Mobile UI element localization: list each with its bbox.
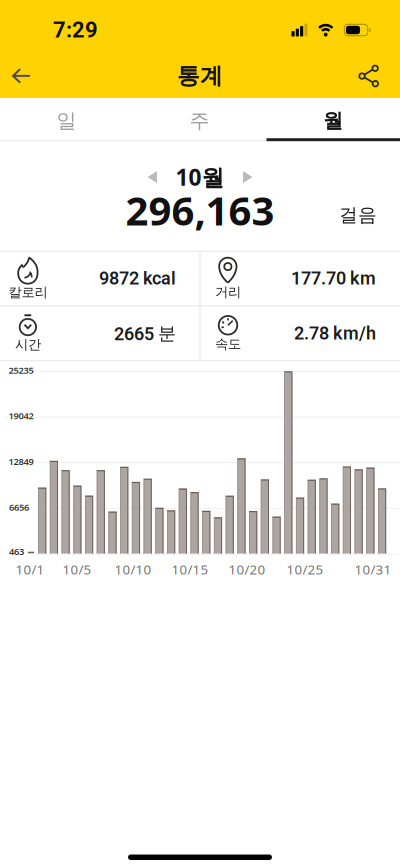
button[interactable]: Next month xyxy=(235,163,260,191)
staticText: 177.70 km xyxy=(291,268,376,289)
staticText: 2.78 km/h xyxy=(294,323,376,344)
staticText: 속도 xyxy=(215,336,241,352)
staticText: 10/25 xyxy=(286,560,323,578)
staticText: 주 xyxy=(189,108,209,133)
button[interactable]: 월 xyxy=(266,99,400,142)
staticText: 25235 xyxy=(8,364,33,376)
staticText: 걸음 xyxy=(339,204,377,226)
staticText: 2665 분 xyxy=(114,322,176,345)
staticText: 463 xyxy=(9,545,24,557)
staticText: 6656 xyxy=(9,501,29,513)
staticText: 10/31 xyxy=(354,560,391,578)
button[interactable]: Back xyxy=(0,54,31,97)
staticText: 10/15 xyxy=(171,560,208,578)
staticText: 9872 kcal xyxy=(99,268,176,289)
staticText: 월 xyxy=(323,108,343,133)
staticText: 통계 xyxy=(177,62,223,90)
staticText: 296,163 xyxy=(125,183,274,237)
staticText: 19042 xyxy=(8,410,33,422)
staticText: 거리 xyxy=(215,284,241,300)
button[interactable]: 주 xyxy=(133,99,266,142)
staticText: 칼로리 xyxy=(8,284,47,300)
staticText: 10/20 xyxy=(228,560,265,578)
button[interactable]: 일 xyxy=(0,99,133,142)
staticText: 10월 xyxy=(175,162,224,192)
staticText: 12849 xyxy=(8,455,33,468)
staticText: 시간 xyxy=(15,336,41,353)
staticText: 10/5 xyxy=(62,560,91,578)
staticText: 7:29 xyxy=(53,17,98,43)
button[interactable]: Previous month xyxy=(140,163,165,191)
staticText: 일 xyxy=(56,108,76,133)
button[interactable]: Share xyxy=(358,57,400,95)
staticText: 10/1 xyxy=(15,560,44,578)
staticText: 10/10 xyxy=(114,560,151,578)
